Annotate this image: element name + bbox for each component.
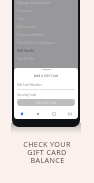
button[interactable]: Check Gift Card Balance <box>14 38 78 46</box>
staticText: Payment Method <box>17 32 45 37</box>
button[interactable]: Stores <box>62 109 78 119</box>
button[interactable]: Gift Cards <box>14 46 78 54</box>
button[interactable]: Add an Item <box>14 22 78 30</box>
button[interactable]: Pay for Me <box>14 54 78 62</box>
staticText: BALANCE <box>30 155 65 163</box>
button[interactable]: Payment Method <box>14 30 78 38</box>
staticText: Pay for Me <box>17 56 35 61</box>
button[interactable]: Scan <box>46 109 62 119</box>
staticText: Add an Item <box>17 24 37 29</box>
staticText: CHECK YOUR <box>23 139 71 147</box>
staticText: Security Code <box>17 93 37 97</box>
staticText: Gift Card Number <box>17 83 42 87</box>
staticText: Manage Auto Reload <box>17 0 51 5</box>
staticText: Add a Gift Card <box>34 73 59 78</box>
button[interactable]: Home <box>14 109 30 119</box>
staticText: Check Gift Card Balance <box>17 40 55 45</box>
button[interactable]: Add Gift Card <box>17 99 75 106</box>
staticText: GIFT CARD <box>27 147 67 155</box>
button[interactable]: Orders <box>30 109 46 119</box>
button[interactable]: Manage Auto Reload <box>14 0 78 6</box>
staticText: Add Gift Card <box>36 101 57 105</box>
staticText: Gift Cards <box>17 48 34 53</box>
staticText: Trips <box>17 16 25 21</box>
staticText: Favorites <box>17 8 32 13</box>
